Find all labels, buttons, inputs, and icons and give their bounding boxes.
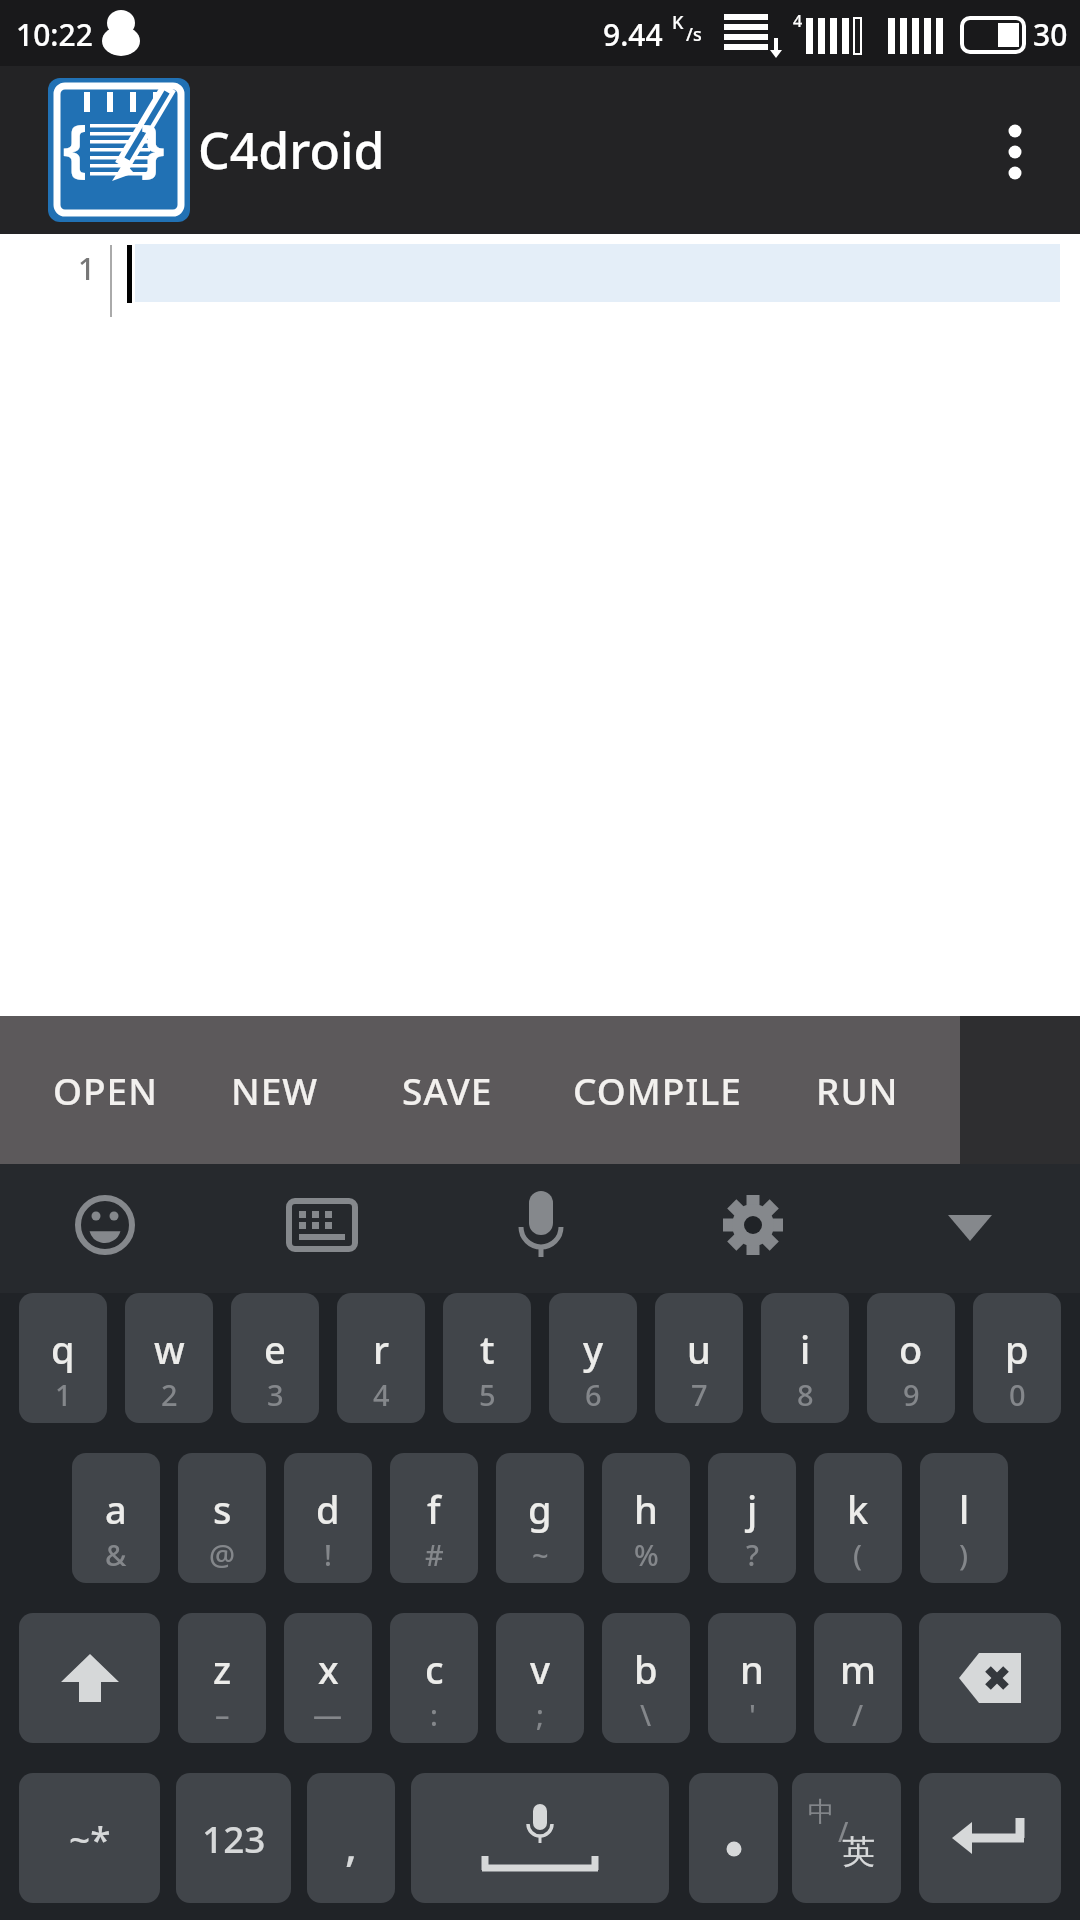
- staticText: 5: [479, 1375, 496, 1414]
- button[interactable]: c: [390, 1613, 478, 1743]
- button[interactable]: RUN: [795, 1026, 920, 1154]
- button[interactable]: [919, 1773, 1061, 1903]
- staticText: 0: [1009, 1375, 1026, 1414]
- staticText: y: [583, 1323, 604, 1375]
- staticText: /s: [686, 22, 702, 47]
- staticText: c: [425, 1643, 444, 1695]
- staticText: \: [640, 1695, 652, 1734]
- staticText: /: [852, 1695, 864, 1734]
- staticText: ): [959, 1535, 969, 1574]
- staticText: 2: [161, 1375, 178, 1414]
- button[interactable]: [980, 100, 1052, 200]
- staticText: p: [1005, 1323, 1029, 1375]
- button[interactable]: [411, 1773, 669, 1903]
- button[interactable]: w: [125, 1293, 213, 1423]
- button[interactable]: t: [443, 1293, 531, 1423]
- staticText: 1: [55, 1375, 72, 1414]
- button[interactable]: n: [708, 1613, 796, 1743]
- staticText: b: [634, 1643, 658, 1695]
- button[interactable]: g: [496, 1453, 584, 1583]
- button[interactable]: [689, 1773, 778, 1903]
- staticText: }: [140, 104, 165, 188]
- button[interactable]: s: [178, 1453, 266, 1583]
- staticText: q: [51, 1323, 75, 1375]
- staticText: i: [800, 1323, 811, 1375]
- staticText: x: [318, 1643, 339, 1695]
- button[interactable]: i: [761, 1293, 849, 1423]
- staticText: a: [105, 1483, 127, 1535]
- staticText: r: [373, 1323, 390, 1375]
- staticText: j: [747, 1483, 758, 1535]
- button[interactable]: 123: [176, 1773, 291, 1903]
- staticText: m: [840, 1643, 876, 1695]
- button[interactable]: v: [496, 1613, 584, 1743]
- staticText: {: [63, 104, 88, 188]
- button[interactable]: x: [284, 1613, 372, 1743]
- staticText: u: [687, 1323, 711, 1375]
- staticText: h: [634, 1483, 658, 1535]
- button[interactable]: [55, 1175, 155, 1275]
- button[interactable]: f: [390, 1453, 478, 1583]
- staticText: 7: [691, 1375, 708, 1414]
- staticText: f: [427, 1483, 441, 1535]
- button[interactable]: [920, 1175, 1020, 1275]
- button[interactable]: y: [549, 1293, 637, 1423]
- button[interactable]: r: [337, 1293, 425, 1423]
- staticText: 3: [267, 1375, 284, 1414]
- staticText: :: [430, 1695, 438, 1734]
- button[interactable]: NEW: [215, 1026, 335, 1154]
- staticText: 4: [373, 1375, 390, 1414]
- button[interactable]: OPEN: [40, 1026, 170, 1154]
- button[interactable]: m: [814, 1613, 902, 1743]
- staticText: ~*: [69, 1813, 111, 1863]
- staticText: t: [480, 1323, 495, 1375]
- staticText: —: [313, 1695, 343, 1734]
- staticText: 英: [842, 1831, 875, 1873]
- button[interactable]: q: [19, 1293, 107, 1423]
- button[interactable]: a: [72, 1453, 160, 1583]
- button[interactable]: k: [814, 1453, 902, 1583]
- staticText: v: [530, 1643, 551, 1695]
- button[interactable]: [491, 1175, 591, 1275]
- staticText: 9.44: [603, 14, 663, 55]
- button[interactable]: d: [284, 1453, 372, 1583]
- button[interactable]: p: [973, 1293, 1061, 1423]
- staticText: (: [853, 1535, 863, 1574]
- button[interactable]: ,: [307, 1773, 395, 1903]
- staticText: ': [749, 1695, 756, 1734]
- staticText: d: [316, 1483, 340, 1535]
- button[interactable]: l: [920, 1453, 1008, 1583]
- staticText: /: [838, 1813, 849, 1850]
- staticText: !: [324, 1535, 332, 1574]
- staticText: w: [154, 1323, 185, 1375]
- button[interactable]: [19, 1613, 160, 1743]
- button[interactable]: COMPILE: [555, 1026, 760, 1154]
- staticText: 4: [793, 10, 803, 32]
- staticText: ;: [536, 1695, 544, 1734]
- button[interactable]: 中: [792, 1773, 901, 1903]
- staticText: s: [213, 1483, 232, 1535]
- button[interactable]: u: [655, 1293, 743, 1423]
- button[interactable]: z: [178, 1613, 266, 1743]
- staticText: C4droid: [198, 116, 385, 184]
- button[interactable]: [703, 1175, 803, 1275]
- button[interactable]: e: [231, 1293, 319, 1423]
- staticText: z: [213, 1643, 232, 1695]
- button[interactable]: ~*: [19, 1773, 160, 1903]
- staticText: NEW: [231, 1065, 319, 1115]
- staticText: RUN: [816, 1065, 899, 1115]
- staticText: SAVE: [402, 1065, 493, 1115]
- staticText: o: [899, 1323, 923, 1375]
- staticText: 9: [903, 1375, 920, 1414]
- button[interactable]: j: [708, 1453, 796, 1583]
- staticText: @: [209, 1535, 236, 1574]
- button[interactable]: SAVE: [380, 1026, 515, 1154]
- button[interactable]: [919, 1613, 1061, 1743]
- button[interactable]: o: [867, 1293, 955, 1423]
- staticText: e: [264, 1323, 286, 1375]
- button[interactable]: [272, 1175, 372, 1275]
- button[interactable]: b: [602, 1613, 690, 1743]
- staticText: g: [528, 1483, 552, 1535]
- button[interactable]: h: [602, 1453, 690, 1583]
- staticText: k: [847, 1483, 869, 1535]
